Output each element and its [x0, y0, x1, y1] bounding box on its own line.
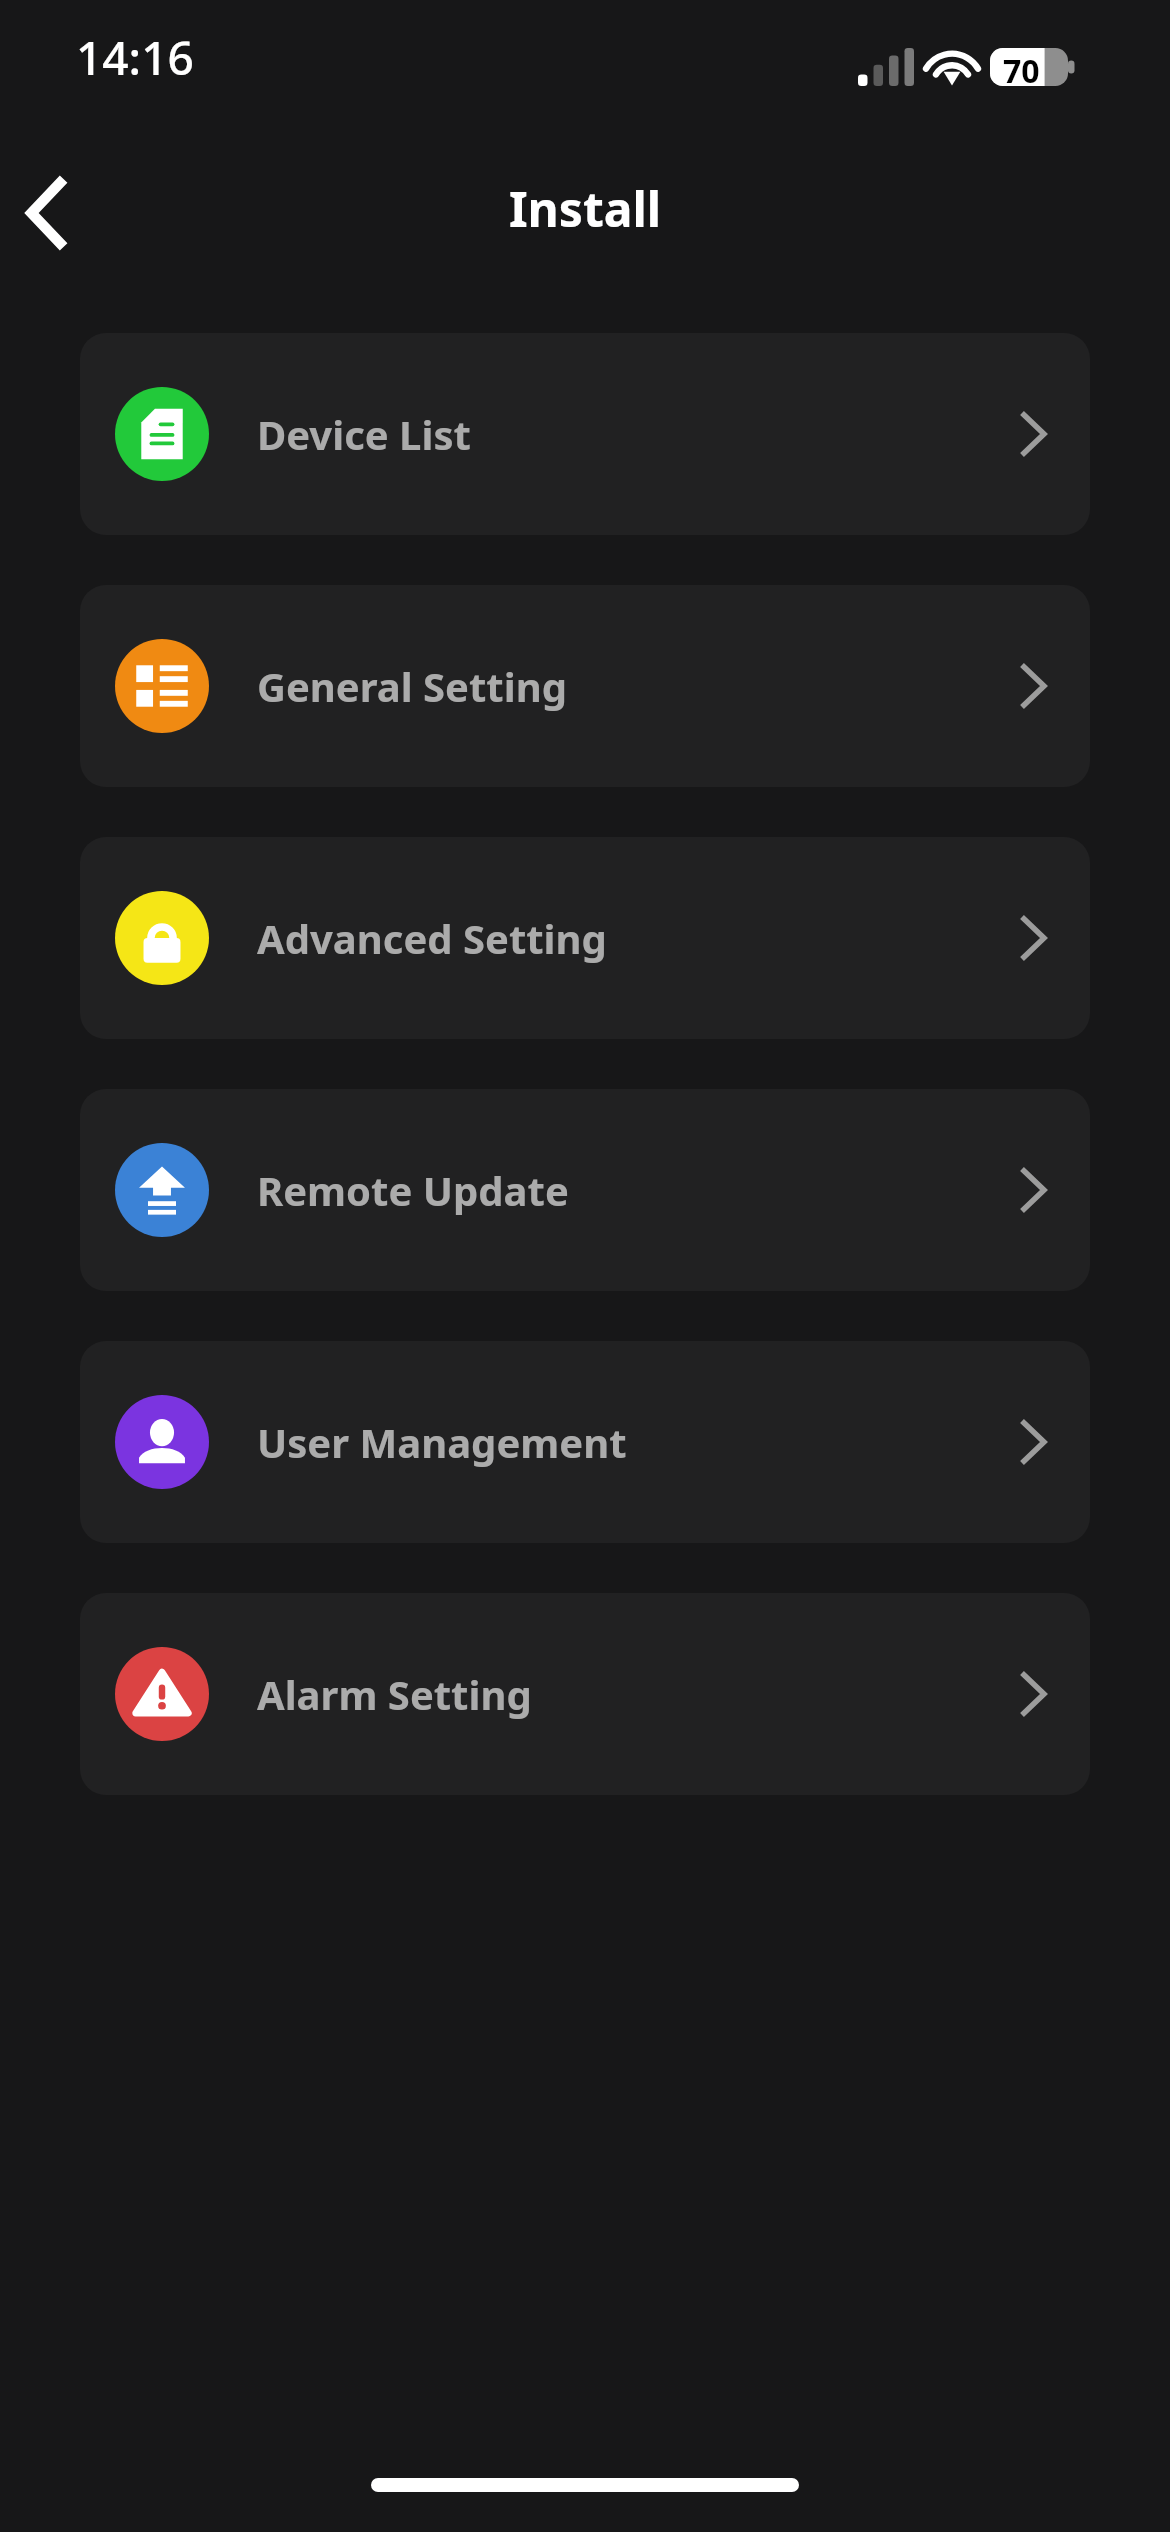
- staticText: Remote Update: [257, 1163, 569, 1217]
- staticText: Advanced Setting: [257, 911, 607, 965]
- staticText: User Management: [257, 1415, 627, 1469]
- staticText: 14:16: [76, 26, 194, 89]
- button[interactable]: General Setting: [80, 585, 1090, 787]
- staticText: Device List: [257, 407, 471, 461]
- button[interactable]: Alarm Setting: [80, 1593, 1090, 1795]
- button[interactable]: Remote Update: [80, 1089, 1090, 1291]
- staticText: 70: [1003, 49, 1040, 93]
- staticText: Install: [0, 176, 1170, 241]
- staticText: Alarm Setting: [257, 1667, 532, 1721]
- button[interactable]: User Management: [80, 1341, 1090, 1543]
- staticText: General Setting: [257, 659, 567, 713]
- button[interactable]: Advanced Setting: [80, 837, 1090, 1039]
- button[interactable]: Back: [0, 168, 90, 258]
- button[interactable]: Device List: [80, 333, 1090, 535]
